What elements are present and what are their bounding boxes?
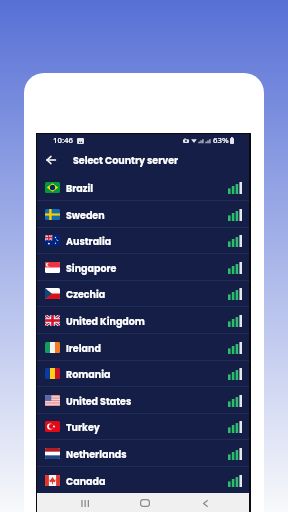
button[interactable]: Sweden	[37, 201, 249, 228]
staticText: Singapore	[66, 262, 117, 275]
button[interactable]: United Kingdom	[37, 307, 249, 334]
staticText: Select Country server	[73, 154, 179, 167]
button[interactable]: Brazil	[37, 174, 249, 201]
button[interactable]: Back	[195, 496, 215, 510]
button[interactable]: Netherlands	[37, 440, 249, 467]
staticText: Australia	[66, 235, 112, 248]
staticText: United Kingdom	[66, 315, 145, 328]
staticText: Czechia	[66, 288, 106, 301]
button[interactable]: Home	[135, 496, 155, 510]
button[interactable]: Singapore	[37, 254, 249, 281]
button[interactable]: United States	[37, 387, 249, 414]
staticText: Brazil	[66, 182, 94, 195]
staticText: United States	[66, 395, 132, 408]
button[interactable]: Romania	[37, 360, 249, 387]
button[interactable]: Australia	[37, 227, 249, 254]
button[interactable]: Ireland	[37, 334, 249, 361]
staticText: Turkey	[66, 421, 100, 434]
button[interactable]: Turkey	[37, 413, 249, 440]
button[interactable]: Recent apps	[75, 496, 95, 510]
staticText: Canada	[66, 475, 106, 488]
button[interactable]: Back	[41, 150, 61, 170]
button[interactable]: Czechia	[37, 280, 249, 307]
staticText: 10:46	[53, 135, 73, 146]
staticText: Ireland	[66, 342, 101, 355]
staticText: Romania	[66, 368, 111, 381]
staticText: Sweden	[66, 209, 105, 222]
staticText: 63%	[213, 135, 229, 146]
button[interactable]: Canada	[37, 467, 249, 494]
staticText: Netherlands	[66, 448, 127, 461]
